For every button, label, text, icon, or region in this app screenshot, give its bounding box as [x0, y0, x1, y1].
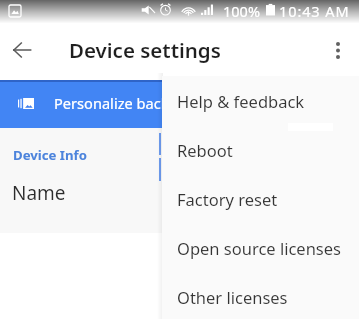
button[interactable]: Other licenses	[162, 272, 359, 319]
staticText: 100%	[223, 1, 260, 21]
button[interactable]: More options	[318, 30, 358, 70]
staticText: Device settings	[69, 36, 221, 64]
staticText: Other licenses	[177, 286, 288, 308]
button[interactable]: Factory reset	[162, 174, 359, 223]
staticText: Reboot	[177, 139, 233, 161]
staticText: 10:43 AM	[279, 1, 350, 21]
button[interactable]: Back	[2, 30, 42, 70]
staticText: Name	[12, 180, 66, 206]
button[interactable]: Open source licenses	[162, 223, 359, 272]
staticText: Help & feedback	[177, 90, 305, 112]
button[interactable]: Device Info	[0, 128, 359, 233]
button[interactable]: Personalize background	[0, 80, 359, 128]
staticText: Personalize background	[54, 93, 220, 113]
staticText: Open source licenses	[177, 237, 341, 259]
staticText: Device Info	[13, 146, 87, 164]
button[interactable]: Help & feedback	[162, 76, 359, 125]
staticText: Factory reset	[177, 188, 278, 210]
button[interactable]: Reboot	[162, 125, 359, 174]
